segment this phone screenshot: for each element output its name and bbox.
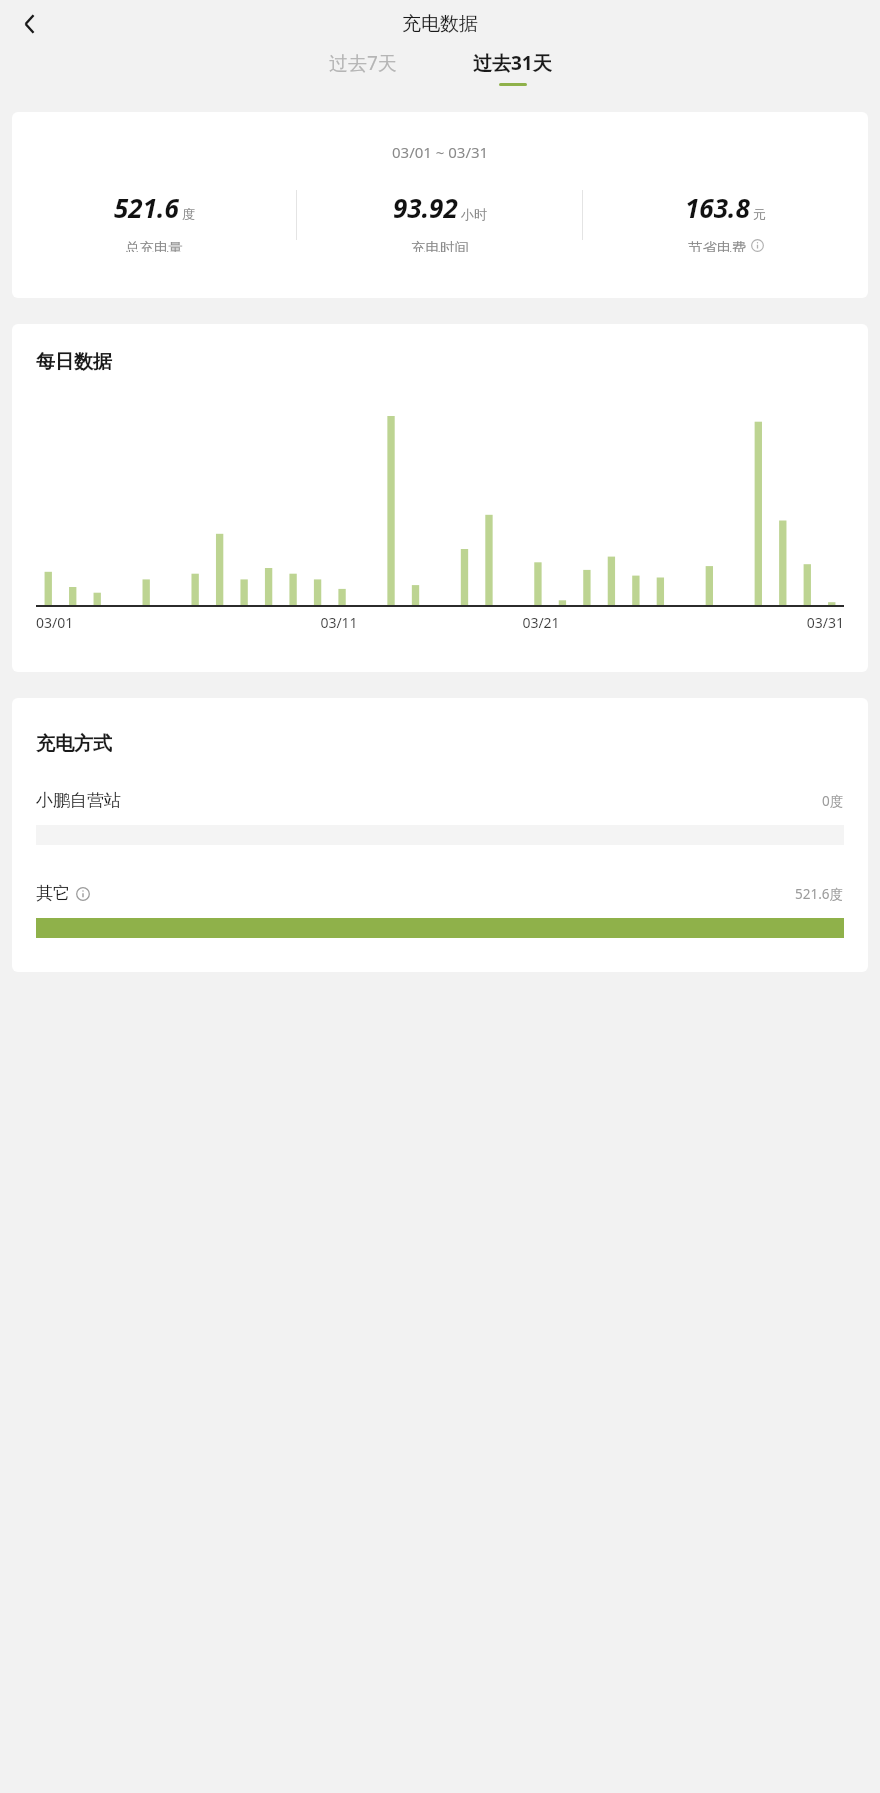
staticText: 小时 [461, 206, 487, 222]
staticText: 521.6度 [795, 885, 844, 903]
button[interactable]: Info [751, 239, 764, 252]
staticText: 充电时间 [411, 239, 469, 252]
staticText: 节省电费 [688, 239, 746, 252]
staticText: 163.8 [685, 190, 750, 225]
staticText: 过去7天 [329, 50, 397, 76]
button[interactable]: 过去31天 [463, 48, 562, 88]
staticText: 93.92 [393, 190, 458, 225]
staticText: 其它 [36, 883, 70, 904]
staticText: 03/11 [238, 613, 440, 632]
staticText: 小鹏自营站 [36, 790, 121, 811]
staticText: 每日数据 [36, 350, 112, 374]
button[interactable]: 过去7天 [319, 48, 407, 88]
staticText: 元 [753, 206, 766, 222]
staticText: 充电数据 [402, 12, 478, 36]
staticText: 总充电量 [125, 239, 183, 252]
button[interactable]: Back [8, 2, 52, 46]
button[interactable]: 小鹏自营站 [36, 790, 844, 845]
staticText: 充电方式 [36, 732, 112, 756]
button[interactable]: Info [76, 887, 90, 901]
staticText: 03/21 [440, 613, 642, 632]
button[interactable]: 其它 [36, 883, 844, 938]
staticText: 03/31 [642, 613, 844, 632]
staticText: 过去31天 [473, 50, 552, 76]
staticText: 03/01 [36, 613, 238, 632]
staticText: 521.6 [114, 190, 179, 225]
staticText: 0度 [822, 792, 844, 810]
staticText: 03/01 ~ 03/31 [392, 142, 489, 162]
staticText: 度 [182, 206, 195, 222]
